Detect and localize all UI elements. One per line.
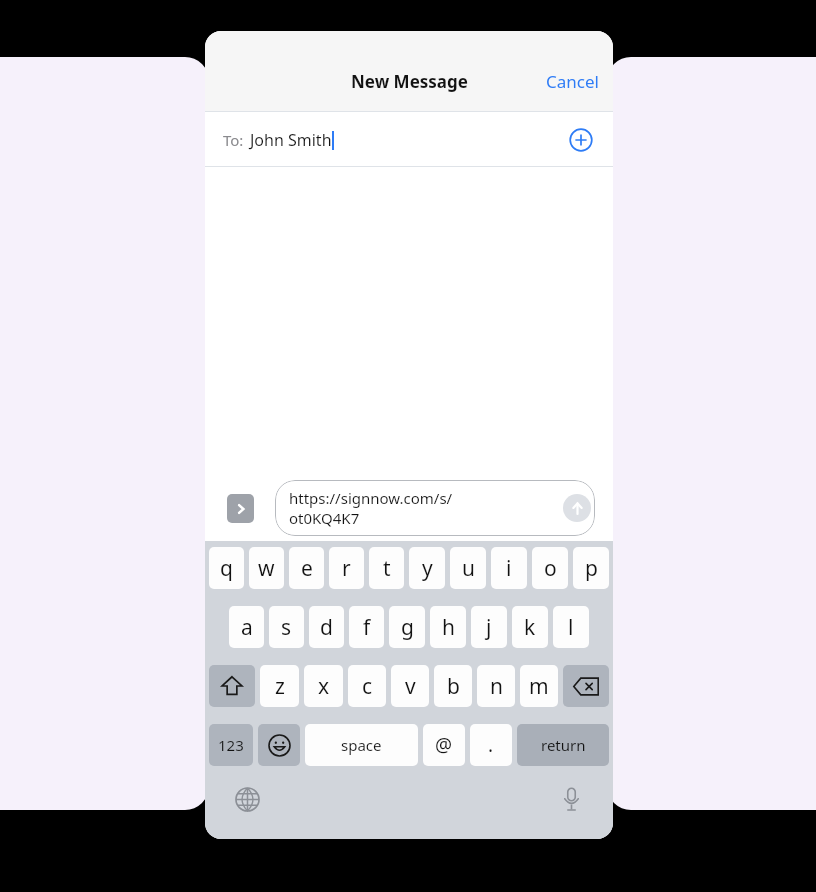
staticText: q <box>220 554 233 583</box>
button[interactable]: 123 <box>209 724 253 766</box>
button[interactable]: return <box>517 724 609 766</box>
button[interactable]: @ <box>423 724 465 766</box>
button[interactable]: Send <box>563 494 591 522</box>
button[interactable]: v <box>391 665 429 707</box>
button[interactable]: w <box>249 547 284 589</box>
button[interactable]: g <box>389 606 425 648</box>
button[interactable]: k <box>512 606 548 648</box>
button[interactable]: p <box>573 547 609 589</box>
staticText: n <box>490 672 503 701</box>
staticText: t <box>383 554 391 583</box>
staticText: p <box>585 554 598 583</box>
button[interactable]: z <box>260 665 299 707</box>
staticText: g <box>401 613 414 642</box>
button[interactable]: n <box>477 665 515 707</box>
staticText: o <box>544 554 557 583</box>
button[interactable]: Dictate <box>551 779 591 819</box>
staticText: return <box>541 735 586 755</box>
staticText: d <box>320 613 333 642</box>
staticText: a <box>241 613 253 642</box>
staticText: . <box>488 732 494 758</box>
staticText: ot0KQ4K7 <box>289 508 360 528</box>
button[interactable]: r <box>329 547 364 589</box>
staticText: m <box>529 672 549 701</box>
staticText: y <box>422 554 433 583</box>
button[interactable]: Emoji <box>258 724 300 766</box>
button[interactable]: Cancel <box>532 64 613 99</box>
staticText: j <box>486 613 492 642</box>
staticText: i <box>506 554 512 583</box>
staticText: r <box>342 554 351 583</box>
button[interactable]: d <box>309 606 344 648</box>
staticText: space <box>341 735 382 755</box>
button[interactable]: e <box>289 547 324 589</box>
staticText: k <box>524 613 536 642</box>
staticText: s <box>281 613 292 642</box>
button[interactable]: s <box>269 606 304 648</box>
button[interactable]: i <box>491 547 527 589</box>
button[interactable]: space <box>305 724 418 766</box>
staticText: e <box>301 554 313 583</box>
button[interactable]: More options <box>227 494 254 523</box>
staticText: New Message <box>351 70 468 93</box>
button[interactable]: y <box>409 547 445 589</box>
button[interactable]: a <box>229 606 264 648</box>
staticText: @ <box>435 732 453 758</box>
staticText: To: <box>223 130 244 150</box>
staticText: h <box>442 613 455 642</box>
button[interactable]: h <box>430 606 466 648</box>
staticText: Cancel <box>546 70 599 93</box>
button[interactable]: Change language <box>227 779 267 819</box>
button[interactable]: q <box>209 547 244 589</box>
button[interactable]: l <box>553 606 589 648</box>
button[interactable]: o <box>532 547 568 589</box>
staticText: x <box>318 672 330 701</box>
staticText: w <box>258 554 275 583</box>
button[interactable]: . <box>470 724 512 766</box>
staticText: v <box>405 672 416 701</box>
button[interactable]: x <box>304 665 343 707</box>
button[interactable]: u <box>450 547 486 589</box>
staticText: https://signnow.com/s/ <box>289 488 453 508</box>
button[interactable]: Add contact <box>563 122 599 158</box>
button[interactable]: To: <box>205 112 613 167</box>
button[interactable]: j <box>471 606 507 648</box>
button[interactable]: m <box>520 665 558 707</box>
button[interactable]: f <box>349 606 384 648</box>
button[interactable]: t <box>369 547 404 589</box>
staticText: John Smith <box>250 129 332 151</box>
button[interactable]: b <box>434 665 472 707</box>
button[interactable]: c <box>348 665 386 707</box>
button[interactable]: Shift <box>209 665 255 707</box>
staticText: f <box>363 613 371 642</box>
button[interactable]: https://signnow.com/s/ <box>275 480 595 536</box>
staticText: l <box>568 613 574 642</box>
staticText: z <box>275 672 285 701</box>
button[interactable]: Backspace <box>563 665 609 707</box>
staticText: 123 <box>218 735 244 755</box>
staticText: u <box>462 554 475 583</box>
staticText: c <box>362 672 373 701</box>
staticText: b <box>447 672 460 701</box>
